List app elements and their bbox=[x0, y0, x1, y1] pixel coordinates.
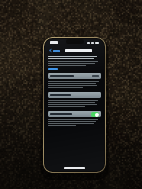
button[interactable]: Toggle setting bbox=[91, 112, 99, 117]
button[interactable] bbox=[48, 92, 101, 98]
button[interactable]: Toggle setting bbox=[48, 111, 101, 117]
button[interactable] bbox=[48, 68, 58, 70]
button[interactable] bbox=[48, 73, 101, 79]
button[interactable]: Back bbox=[48, 48, 61, 53]
